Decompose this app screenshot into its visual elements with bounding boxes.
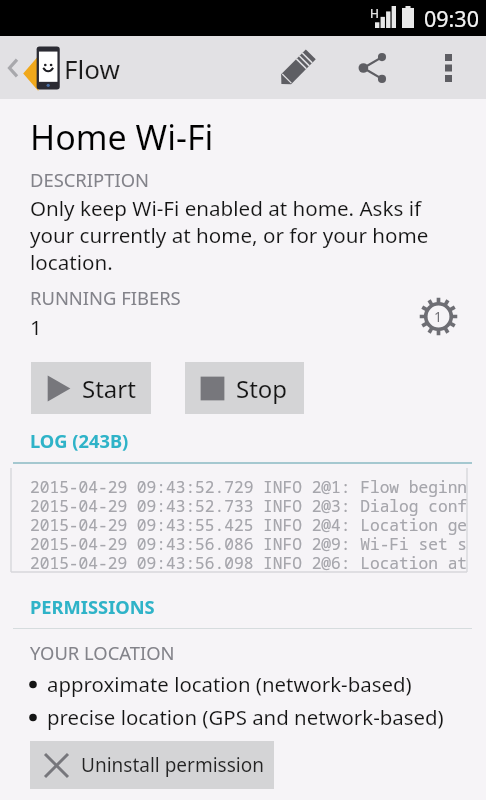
staticText: approximate location (network-based) xyxy=(47,670,412,698)
staticText: 1 xyxy=(434,307,443,326)
button[interactable]: Navigate up, Flow xyxy=(0,45,130,91)
staticText: 1 xyxy=(30,313,42,341)
staticText: DESCRIPTION xyxy=(30,167,149,192)
staticText: LOG (243B) xyxy=(30,428,129,453)
staticText: precise location (GPS and network-based) xyxy=(47,703,444,731)
staticText: Start xyxy=(82,372,136,405)
staticText: Flow xyxy=(64,51,120,86)
button[interactable]: Stop xyxy=(185,362,304,414)
staticText: Home Wi-Fi xyxy=(30,114,214,160)
staticText: 2015-04-29 09:43:52.729 INFO 2@1: Flow b… xyxy=(30,476,468,574)
staticText: 09:30 xyxy=(424,4,479,33)
button[interactable]: Fiber settings xyxy=(413,291,463,341)
button[interactable]: More options xyxy=(424,36,472,99)
button[interactable]: Uninstall permission xyxy=(30,741,274,789)
button[interactable]: Share xyxy=(349,36,397,99)
staticText: H xyxy=(370,5,379,21)
button[interactable]: Start xyxy=(31,362,151,414)
staticText: RUNNING FIBERS xyxy=(30,285,181,310)
button[interactable]: Edit xyxy=(273,36,321,99)
staticText: PERMISSIONS xyxy=(30,594,155,619)
staticText: Stop xyxy=(236,372,288,405)
staticText: Only keep Wi-Fi enabled at home. Asks if… xyxy=(30,194,429,276)
staticText: Uninstall permission xyxy=(81,752,264,778)
staticText: YOUR LOCATION xyxy=(30,640,175,665)
